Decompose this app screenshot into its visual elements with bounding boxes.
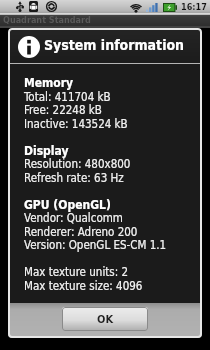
staticText: Max texture units: 2 (24, 265, 129, 278)
staticText: Refresh rate: 63 Hz (24, 171, 124, 184)
staticText: Vendor: Qualcomm (24, 211, 123, 224)
button[interactable]: OK (62, 307, 148, 331)
other: USB connected (16, 1, 24, 12)
staticText: System information (44, 37, 185, 53)
staticText: Total: 411704 kB (24, 90, 111, 103)
staticText: Renderer: Adreno 200 (24, 225, 138, 238)
staticText: Memory (24, 76, 74, 90)
staticText: Version: OpenGL ES-CM 1.1 (24, 238, 167, 251)
staticText: GPU (OpenGL) (24, 198, 111, 212)
staticText: Quadrant Standard (3, 15, 91, 25)
staticText: Max texture size: 4096 (24, 279, 143, 292)
other: Wi-Fi (131, 3, 141, 13)
staticText: OK (97, 313, 114, 326)
staticText: Resolution: 480x800 (24, 157, 131, 170)
staticText: Display (24, 144, 69, 158)
staticText: Free: 22248 kB (24, 103, 102, 116)
other: Sync (46, 1, 57, 12)
staticText: 16:17 (181, 2, 207, 12)
staticText: Inactive: 143524 kB (24, 117, 128, 130)
